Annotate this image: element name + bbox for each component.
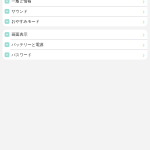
button[interactable]: パスワード [3,50,147,60]
staticText: 画面表示 [11,32,27,37]
staticText: おやすみモード [11,19,39,24]
staticText: › [142,50,144,59]
button[interactable]: 画面表示 [3,30,147,40]
staticText: › [142,0,144,6]
staticText: 一般と情報 [11,0,31,4]
staticText: › [142,7,144,16]
button[interactable]: 一般と情報 [3,0,147,7]
staticText: › [142,40,144,49]
staticText: › [142,17,144,26]
staticText: › [142,30,144,39]
button[interactable]: おやすみモード [3,17,147,26]
staticText: パスワード [11,52,31,57]
staticText: バッテリーと電源 [11,42,43,47]
button[interactable]: サウンド [3,7,147,17]
button[interactable]: バッテリーと電源 [3,40,147,50]
staticText: サウンド [11,9,27,14]
